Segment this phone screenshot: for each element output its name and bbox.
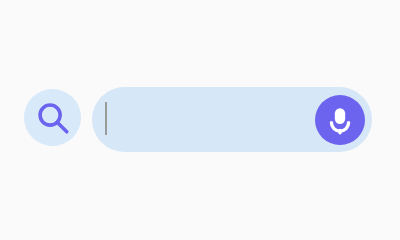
button[interactable]: Search <box>24 89 81 146</box>
button[interactable]: Voice search <box>315 95 365 145</box>
button[interactable]: Voice search <box>92 87 372 152</box>
